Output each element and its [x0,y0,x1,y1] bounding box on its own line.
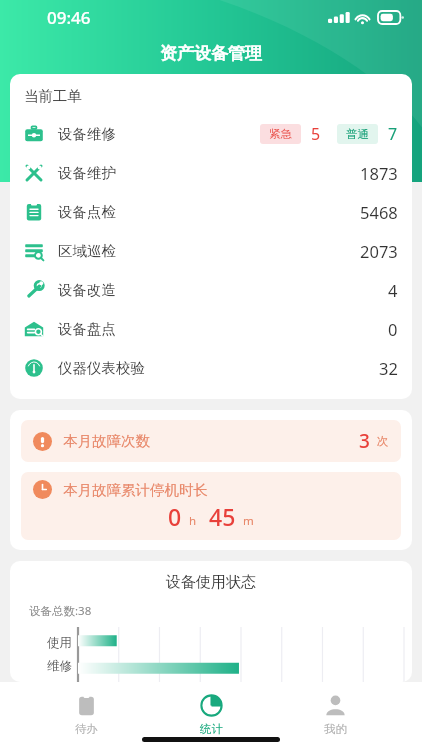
staticText: 09:46 [47,6,91,29]
staticText: 设备盘点 [58,320,116,338]
staticText: 2073 [360,240,398,262]
staticText: 设备总数:38 [29,603,92,619]
button[interactable]: 设备点检 [10,192,412,231]
staticText: 资产设备管理 [160,43,262,64]
button[interactable]: 区域巡检 [10,231,412,270]
staticText: 设备使用状态 [10,573,412,592]
button[interactable]: 设备维修 [10,114,412,153]
staticText: 次 [377,434,389,448]
button[interactable]: 设备改造 [10,270,412,309]
button[interactable]: 我的 [298,690,373,740]
staticText: 区域巡检 [58,242,116,260]
staticText: 本月故障次数 [63,432,150,450]
staticText: 维修 [47,658,72,674]
staticText: 当前工单 [24,87,82,105]
staticText: 使用 [47,635,72,651]
staticText: 普通 [346,127,369,141]
staticText: 32 [379,357,398,379]
staticText: 设备点检 [58,203,116,221]
staticText: 3 [359,428,370,454]
button[interactable]: 设备盘点 [10,309,412,348]
button[interactable]: 统计 [174,690,249,740]
button[interactable]: 本月故障次数 [21,420,401,462]
staticText: 5468 [360,201,398,223]
staticText: 5 [311,123,321,145]
staticText: 0 [168,501,182,532]
staticText: h [189,513,197,529]
staticText: 我的 [324,722,347,736]
staticText: 设备维护 [58,164,116,182]
staticText: 0 [388,318,398,340]
button[interactable]: 本月故障累计停机时长 [21,472,401,540]
staticText: 7 [388,123,398,145]
staticText: 待办 [75,722,98,736]
staticText: m [243,513,254,529]
staticText: 紧急 [269,127,292,141]
staticText: 设备改造 [58,281,116,299]
staticText: 1873 [360,162,398,184]
staticText: 45 [209,501,236,532]
button[interactable]: 设备维护 [10,153,412,192]
staticText: 设备维修 [58,125,116,143]
staticText: 仪器仪表校验 [58,359,145,377]
button[interactable]: 待办 [49,690,124,740]
staticText: 本月故障累计停机时长 [63,481,208,499]
staticText: 4 [388,279,398,301]
button[interactable]: 仪器仪表校验 [10,348,412,387]
staticText: 统计 [200,722,223,736]
